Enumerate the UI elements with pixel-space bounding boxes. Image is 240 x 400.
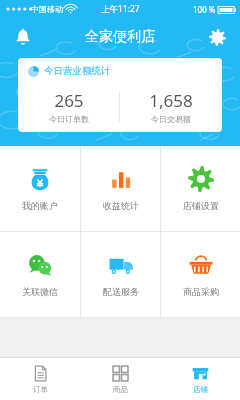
staticText: 店铺 [193, 385, 208, 394]
staticText: 商品采购 [183, 286, 219, 297]
button[interactable]: Notifications [8, 22, 38, 52]
button[interactable]: 店铺 [160, 358, 240, 400]
button[interactable]: 商品采购 [161, 232, 240, 317]
staticText: 1,658 [149, 89, 193, 112]
button[interactable]: 关联微信 [0, 232, 80, 317]
staticText: 配送服务 [103, 286, 139, 297]
staticText: 关联微信 [22, 286, 58, 297]
staticText: 全家便利店 [85, 28, 155, 46]
button[interactable]: 我的账户 [0, 146, 80, 231]
staticText: 店铺设置 [183, 200, 219, 211]
staticText: 100 % [193, 4, 216, 15]
staticText: 收益统计 [103, 200, 139, 211]
button[interactable]: 配送服务 [81, 232, 160, 317]
staticText: 商品 [113, 385, 128, 394]
button[interactable]: 商品 [80, 358, 160, 400]
staticText: 今日营业额统计 [44, 65, 111, 77]
button[interactable]: Settings [202, 22, 232, 52]
button[interactable]: 今日营业额统计 [18, 58, 222, 132]
staticText: 我的账户 [22, 200, 58, 211]
button[interactable]: 店铺设置 [161, 146, 240, 231]
staticText: 上午11:27 [101, 3, 140, 15]
staticText: 今日交易额 [151, 114, 191, 124]
staticText: 265 [54, 89, 84, 112]
button[interactable]: 订单 [0, 358, 80, 400]
staticText: 中国移动 [31, 4, 63, 14]
button[interactable]: 收益统计 [81, 146, 160, 231]
staticText: 今日订单数 [49, 114, 89, 124]
staticText: 订单 [33, 385, 48, 394]
